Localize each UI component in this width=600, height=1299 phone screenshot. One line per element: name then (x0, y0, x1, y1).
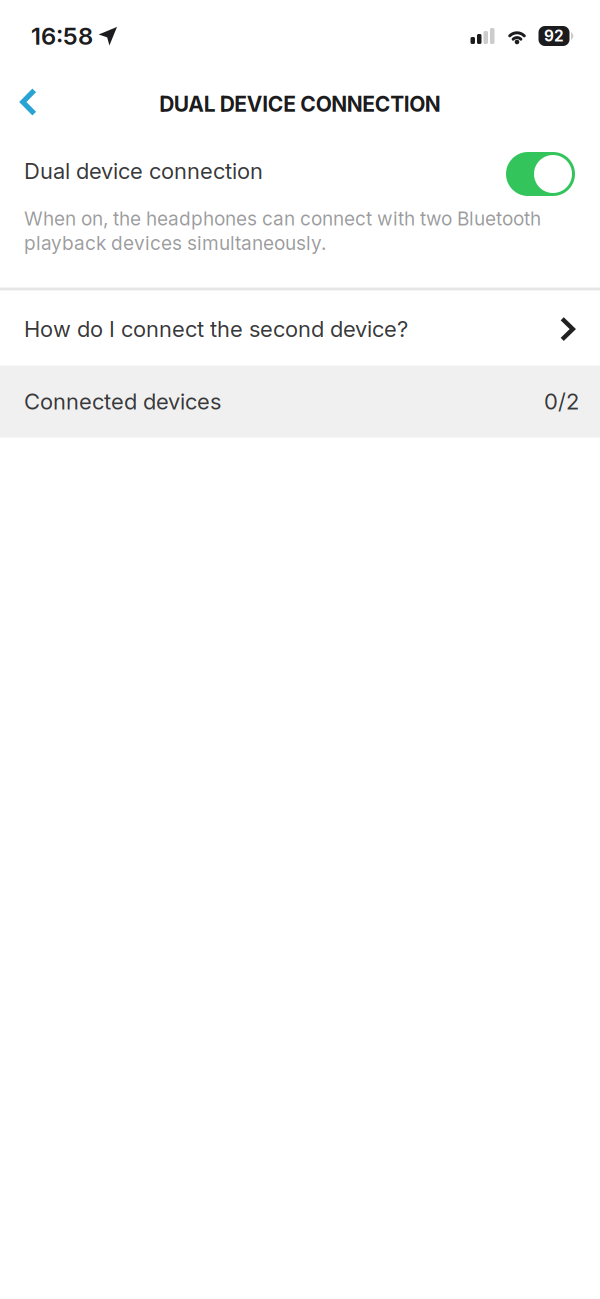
staticText: Connected devices (24, 388, 221, 415)
staticText: DUAL DEVICE CONNECTION (159, 91, 441, 117)
staticText: When on, the headphones can connect with… (24, 207, 541, 255)
staticText: 0/2 (544, 388, 579, 415)
staticText: 16:58 (31, 21, 93, 50)
button[interactable]: Dual device connection (506, 152, 575, 196)
button[interactable]: Back (0, 78, 37, 130)
button[interactable]: How do I connect the second device? (0, 291, 600, 366)
staticText: How do I connect the second device? (24, 316, 408, 342)
button[interactable]: Connected devices (0, 366, 600, 438)
staticText: Dual device connection (24, 158, 263, 184)
staticText: 92 (544, 27, 564, 45)
